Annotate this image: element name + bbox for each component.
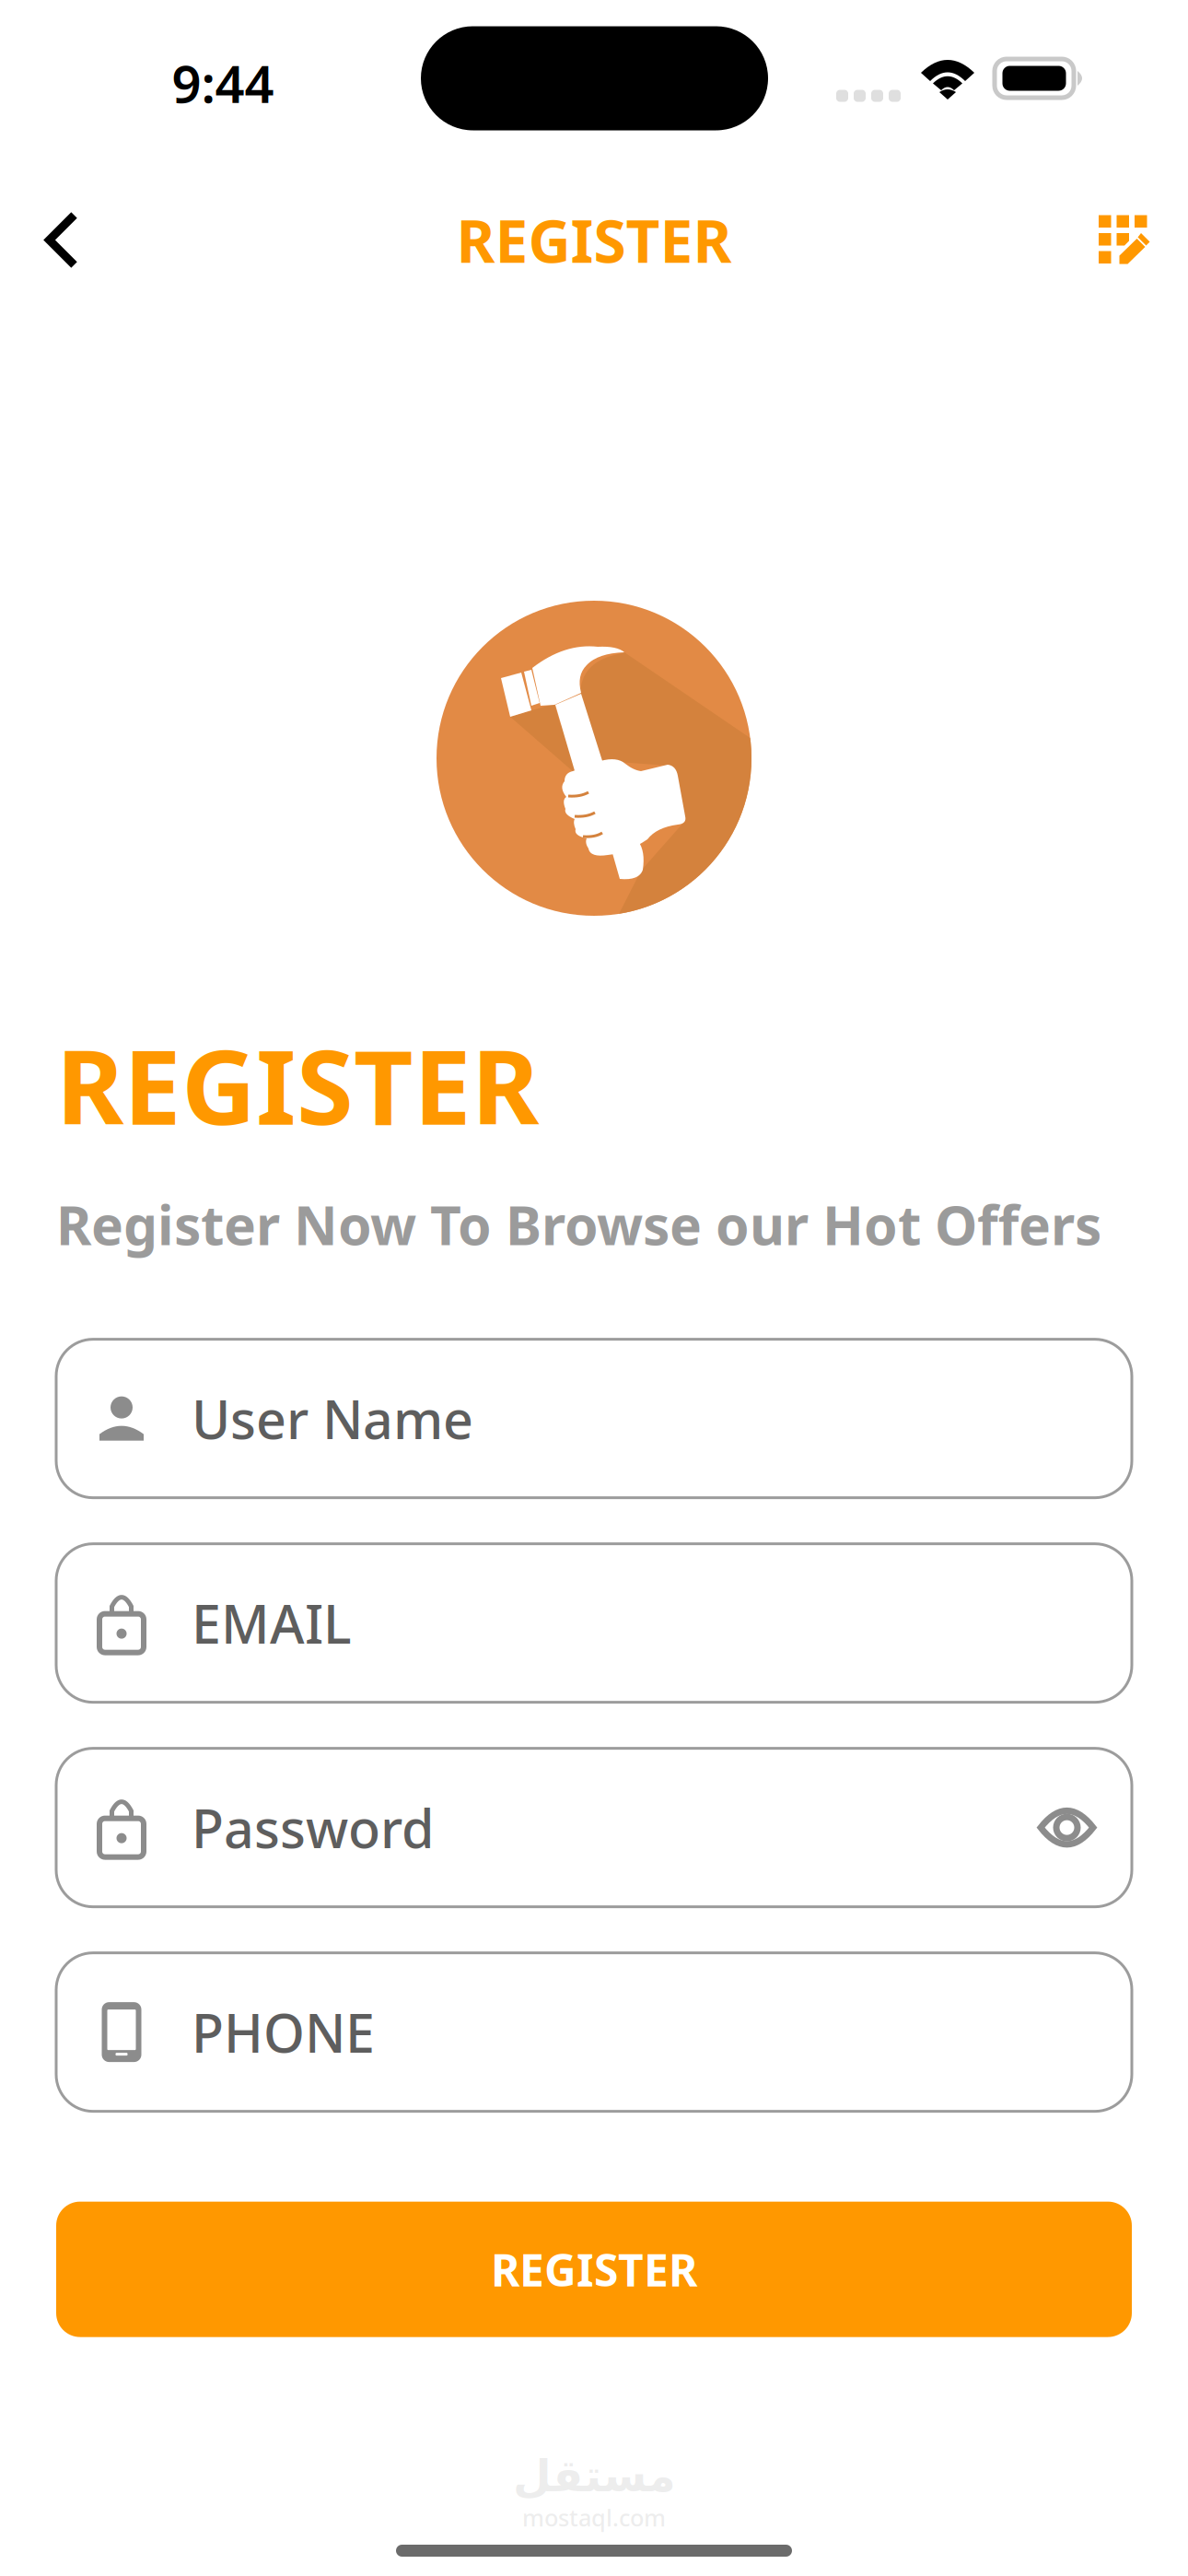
staticText: 9:44 [172,49,274,117]
button[interactable]: Edit list [1074,189,1175,291]
button[interactable]: User Name [56,1339,1132,1498]
staticText: مستقل [512,2451,676,2501]
button[interactable]: Password [56,1748,1132,1907]
staticText: User Name [192,1383,473,1454]
staticText: Password [192,1793,435,1863]
staticText: EMAIL [192,1588,352,1658]
button[interactable]: EMAIL [56,1544,1132,1702]
staticText: Register Now To Browse our Hot Offers [56,1188,1101,1260]
button[interactable]: REGISTER [56,2202,1132,2337]
staticText: REGISTER [56,1016,539,1153]
staticText: mostaql.com [522,2502,666,2533]
button[interactable]: PHONE [56,1953,1132,2111]
staticText: REGISTER [491,2240,697,2299]
staticText: REGISTER [456,201,732,279]
staticText: PHONE [192,1997,375,2067]
button[interactable]: Back [11,189,112,291]
